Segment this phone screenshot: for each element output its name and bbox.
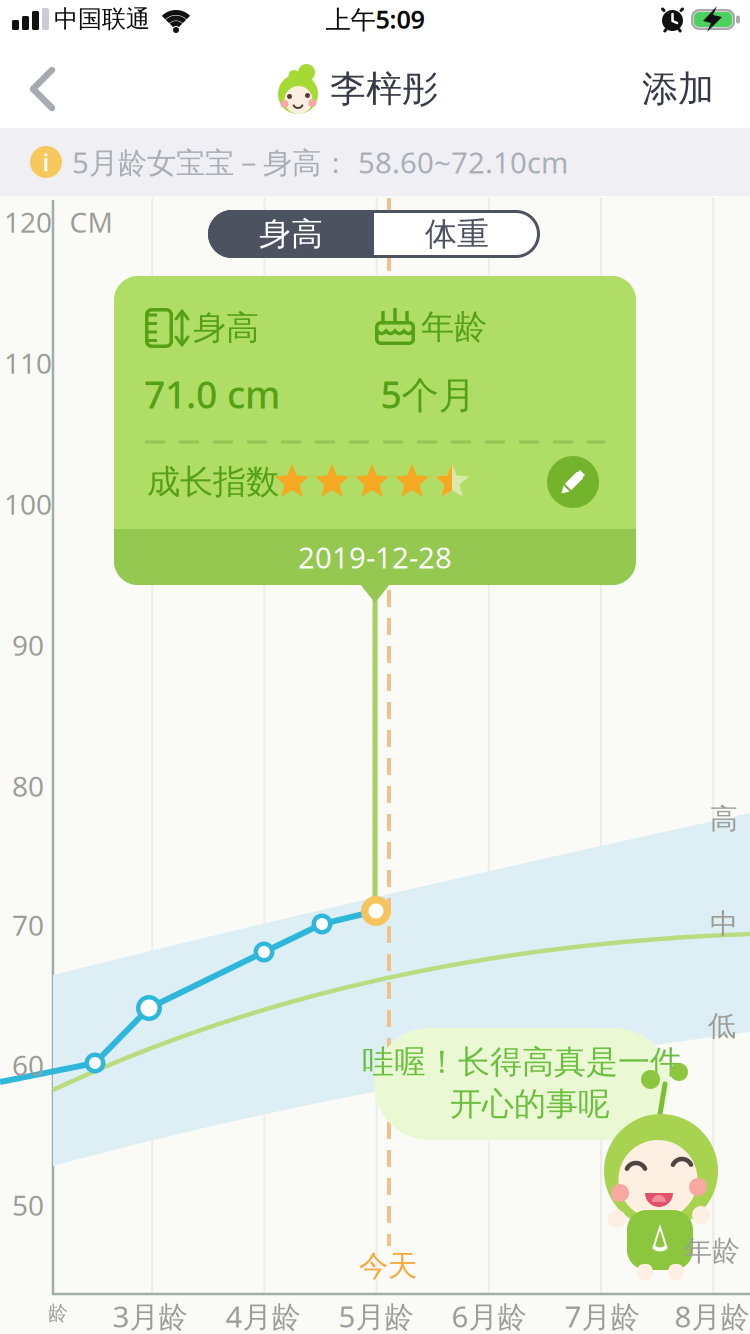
- staticText: 体重: [425, 214, 489, 254]
- staticText: 成长指数: [147, 461, 279, 502]
- staticText: 中国联通: [54, 4, 150, 34]
- staticText: 120: [4, 203, 52, 241]
- button[interactable]: 身高: [208, 210, 374, 258]
- staticText: 3月龄: [112, 1296, 187, 1334]
- button[interactable]: 返回: [7, 54, 77, 124]
- staticText: 7月龄: [564, 1296, 639, 1334]
- staticText: 高: [710, 802, 738, 836]
- staticText: 2019-12-28: [298, 537, 452, 576]
- staticText: 70: [12, 906, 44, 944]
- staticText: 110: [4, 344, 52, 382]
- button[interactable]: 编辑: [547, 456, 599, 508]
- staticText: 6月龄: [451, 1296, 526, 1334]
- staticText: 5月龄女宝宝－身高： 58.60~72.10cm: [72, 142, 568, 181]
- staticText: 李梓彤: [330, 67, 438, 111]
- staticText: 添加: [642, 67, 714, 111]
- staticText: 80: [12, 767, 44, 805]
- staticText: 年龄: [684, 1234, 740, 1268]
- staticText: 年龄: [421, 306, 487, 347]
- staticText: 71.0 cm: [144, 369, 280, 419]
- staticText: 4月龄: [225, 1296, 300, 1334]
- staticText: i: [42, 146, 49, 178]
- staticText: 上午5:09: [325, 2, 424, 36]
- staticText: 60: [12, 1046, 44, 1084]
- staticText: 5个月: [380, 369, 475, 419]
- staticText: 低: [708, 1009, 736, 1043]
- button[interactable]: 添加: [623, 49, 733, 129]
- staticText: 90: [12, 626, 44, 664]
- staticText: 身高: [193, 307, 259, 348]
- staticText: CM: [69, 203, 112, 241]
- staticText: 8月龄: [674, 1296, 749, 1334]
- staticText: 中: [710, 907, 738, 941]
- staticText: 身高: [259, 214, 323, 254]
- staticText: 哇喔！长得高真是一件: [362, 1042, 682, 1082]
- staticText: 龄: [48, 1301, 68, 1325]
- staticText: 开心的事呢: [450, 1084, 610, 1124]
- staticText: 5月龄: [338, 1296, 413, 1334]
- button[interactable]: 体重: [374, 210, 540, 258]
- staticText: 今天: [359, 1248, 417, 1284]
- staticText: 50: [12, 1186, 44, 1224]
- staticText: 100: [4, 485, 52, 523]
